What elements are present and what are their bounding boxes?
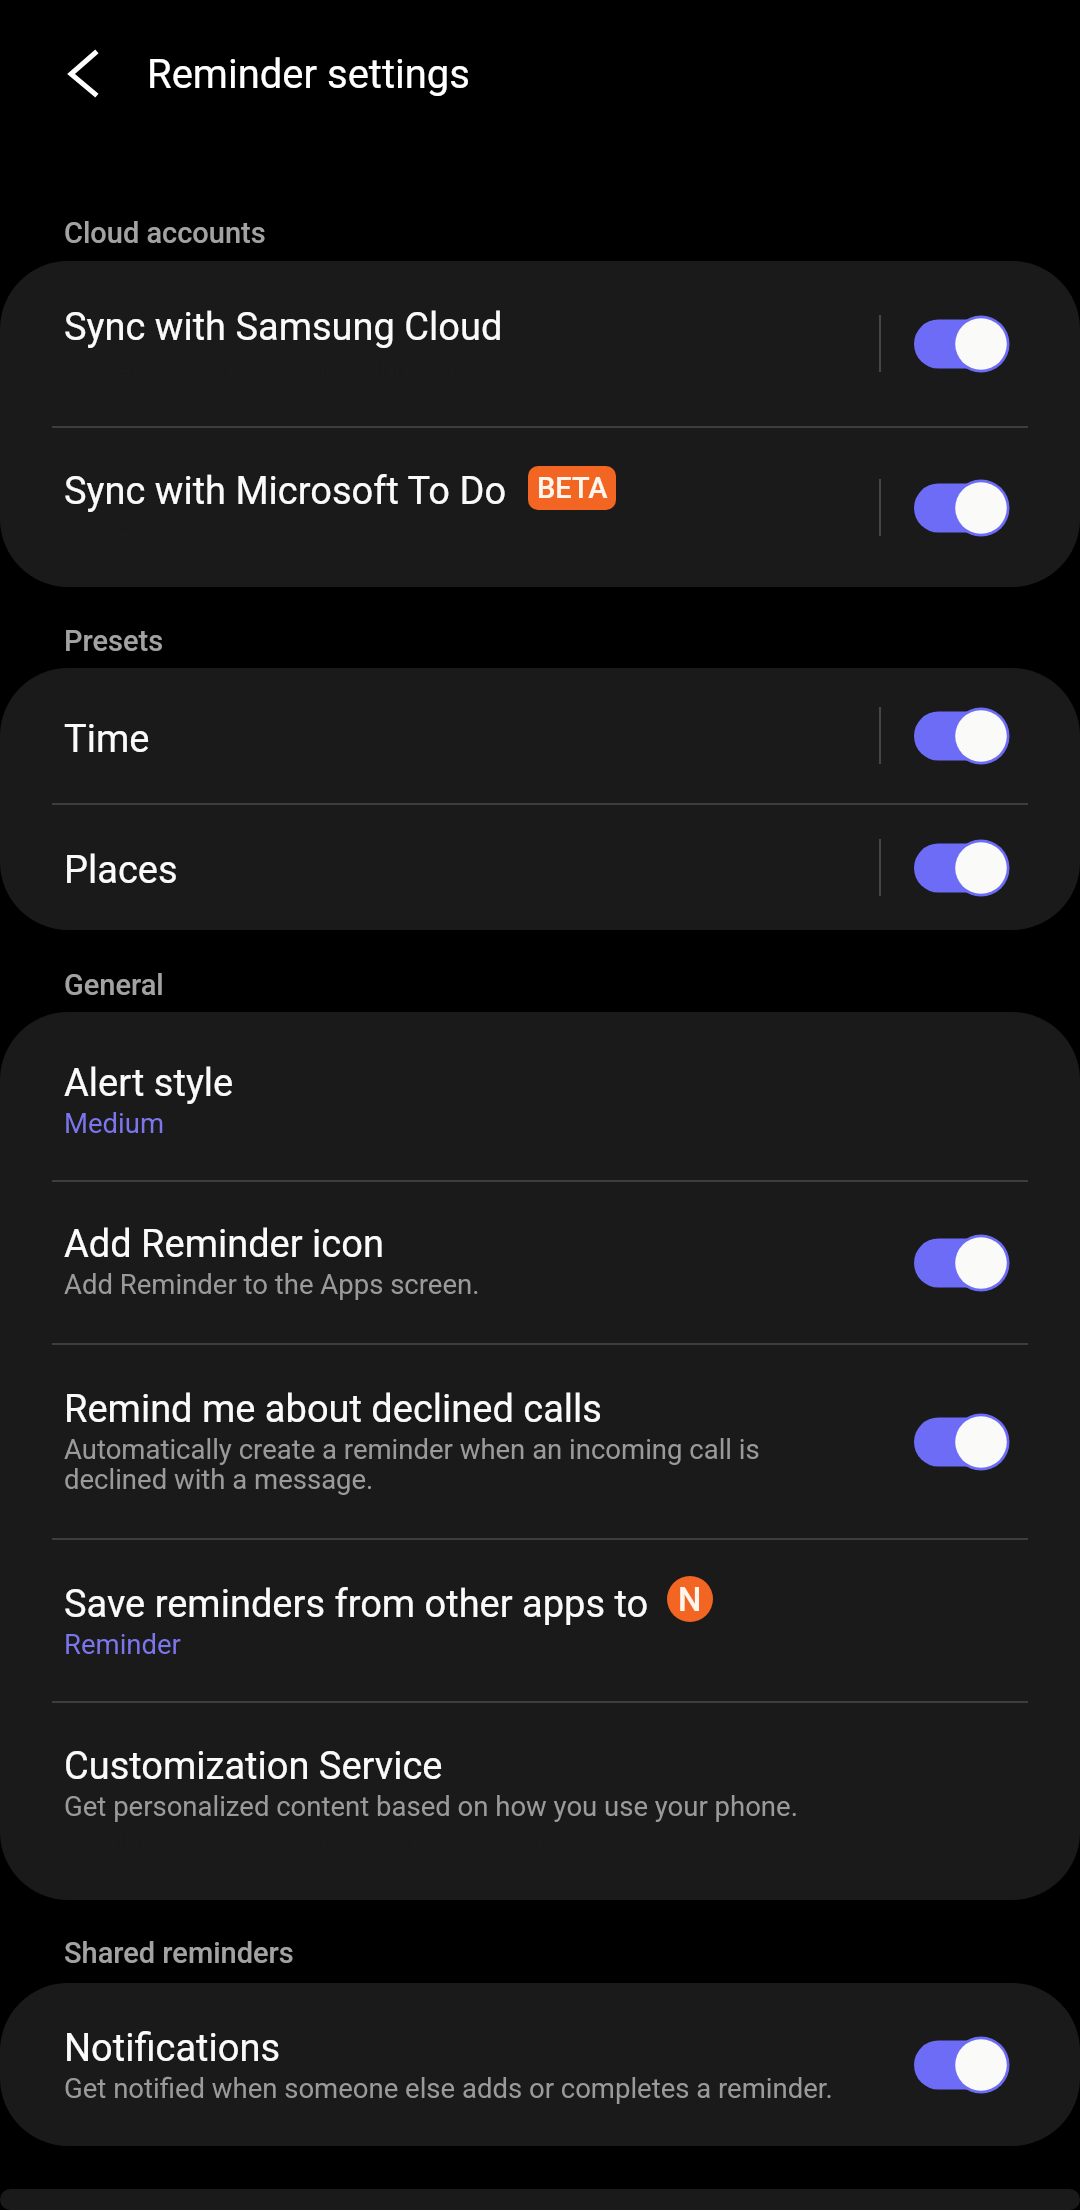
button[interactable]: Alert style: [0, 1012, 1080, 1180]
button[interactable]: Sync with Samsung Cloud: [0, 261, 1080, 426]
button[interactable]: Customization Service: [0, 1703, 1080, 1900]
button[interactable]: Toggle: [914, 823, 1009, 913]
button[interactable]: Notifications: [0, 1983, 1080, 2146]
button[interactable]: Toggle: [914, 691, 1009, 781]
staticText: Time: [64, 717, 150, 762]
staticText: Remind me about declined calls: [64, 1387, 602, 1432]
button[interactable]: Toggle: [914, 2020, 1009, 2110]
staticText: Customization Service: [64, 1744, 443, 1789]
staticText: Places: [64, 848, 178, 893]
staticText: Add Reminder to the Apps screen.: [64, 1268, 480, 1300]
staticText: Reminder: [64, 1628, 181, 1660]
staticText: Automatically create a reminder when an …: [64, 1433, 760, 1495]
button[interactable]: Save reminders from other apps to: [0, 1540, 1080, 1701]
button[interactable]: Time: [0, 668, 1080, 803]
staticText: Add Reminder icon: [64, 1222, 384, 1267]
staticText: BETA: [537, 471, 608, 505]
staticText: Notifications: [64, 2026, 281, 2071]
staticText: N: [678, 1580, 702, 1619]
staticText: Medium: [64, 1107, 165, 1139]
staticText: Presets: [64, 624, 164, 658]
button[interactable]: Navigate up: [28, 30, 118, 120]
staticText: Sync with Microsoft To Do: [64, 469, 507, 514]
button[interactable]: Toggle: [914, 299, 1009, 389]
staticText: General: [64, 968, 164, 1002]
button[interactable]: Toggle: [914, 1218, 1009, 1308]
button[interactable]: Sync with Microsoft To Do: [0, 428, 1080, 587]
button[interactable]: Places: [0, 805, 1080, 930]
button[interactable]: Toggle: [914, 1397, 1009, 1487]
staticText: Cloud accounts: [64, 216, 266, 250]
button[interactable]: Toggle: [914, 463, 1009, 553]
staticText: Reminder settings: [147, 51, 470, 98]
staticText: Sync with Samsung Cloud: [64, 305, 503, 350]
button[interactable]: Remind me about declined calls: [0, 1345, 1080, 1538]
button[interactable]: Add Reminder icon: [0, 1182, 1080, 1343]
staticText: Alert style: [64, 1061, 234, 1106]
staticText: Shared reminders: [64, 1936, 294, 1970]
staticText: Get notified when someone else adds or c…: [64, 2072, 833, 2104]
staticText: Get personalized content based on how yo…: [64, 1790, 798, 1822]
staticText: Save reminders from other apps to: [64, 1582, 649, 1627]
